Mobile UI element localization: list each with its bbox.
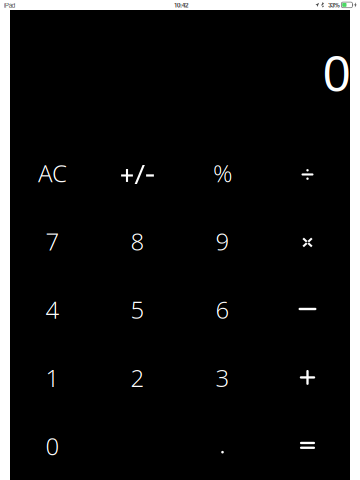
staticText: iPad xyxy=(4,0,15,9)
staticText: 2 xyxy=(130,361,144,394)
button[interactable]: 2 xyxy=(95,343,180,412)
staticText: 9 xyxy=(215,225,229,257)
button[interactable]: Plus or minus xyxy=(95,139,180,207)
staticText: 6 xyxy=(215,293,229,326)
staticText: 4 xyxy=(45,293,59,326)
button[interactable]: 5 xyxy=(95,275,180,343)
staticText: 10:42 xyxy=(174,0,188,9)
staticText: 0 xyxy=(323,47,350,102)
button[interactable]: 6 xyxy=(180,275,265,343)
button[interactable]: 0 xyxy=(10,412,95,480)
button[interactable]: AC xyxy=(10,139,95,207)
staticText: 3 xyxy=(215,361,229,394)
staticText: 7 xyxy=(45,225,59,257)
button[interactable]: 8 xyxy=(95,207,180,275)
button[interactable]: Multiply xyxy=(265,207,350,275)
staticText: 33% xyxy=(328,0,340,9)
button[interactable]: Subtract xyxy=(265,275,350,343)
staticText: 8 xyxy=(130,225,144,257)
button[interactable]: Add xyxy=(265,343,350,412)
staticText: 0 xyxy=(45,429,59,462)
button[interactable]: 7 xyxy=(10,207,95,275)
button[interactable]: 1 xyxy=(10,343,95,412)
staticText: AC xyxy=(38,156,67,189)
button[interactable]: Equals xyxy=(265,412,350,480)
button[interactable]: Decimal point xyxy=(180,412,265,480)
button[interactable]: 4 xyxy=(10,275,95,343)
button[interactable]: 9 xyxy=(180,207,265,275)
staticText: 5 xyxy=(130,293,144,326)
staticText: 1 xyxy=(45,361,59,394)
button[interactable]: % xyxy=(180,139,265,207)
staticText: % xyxy=(213,156,232,189)
button[interactable]: 3 xyxy=(180,343,265,412)
button[interactable]: Divide xyxy=(265,139,350,207)
